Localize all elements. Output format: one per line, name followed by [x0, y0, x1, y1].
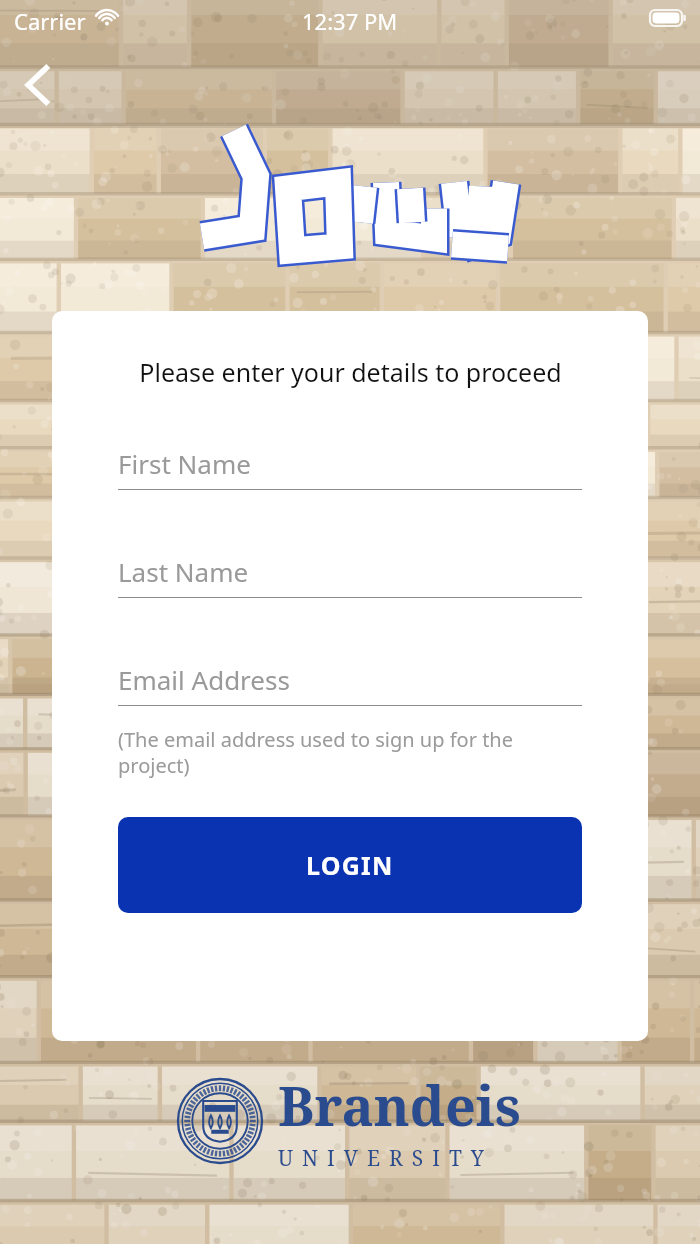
staticText: 12:37 PM [302, 6, 398, 36]
staticText: Carrier [14, 6, 86, 36]
staticText: Brandeis [278, 1068, 521, 1142]
staticText: UNIVERSITY [278, 1144, 493, 1173]
button[interactable]: First Name [118, 437, 582, 490]
button[interactable]: Email Address [118, 653, 582, 706]
button[interactable]: Last Name [118, 545, 582, 598]
button[interactable]: LOGIN [118, 817, 582, 913]
staticText: Last Name [118, 554, 249, 589]
staticText: (The email address used to sign up for t… [118, 726, 582, 779]
staticText: Email Address [118, 662, 290, 697]
staticText: Please enter your details to proceed [139, 355, 562, 389]
staticText: First Name [118, 446, 251, 481]
button[interactable]: Back [8, 56, 66, 114]
staticText: LOGIN [306, 848, 394, 882]
